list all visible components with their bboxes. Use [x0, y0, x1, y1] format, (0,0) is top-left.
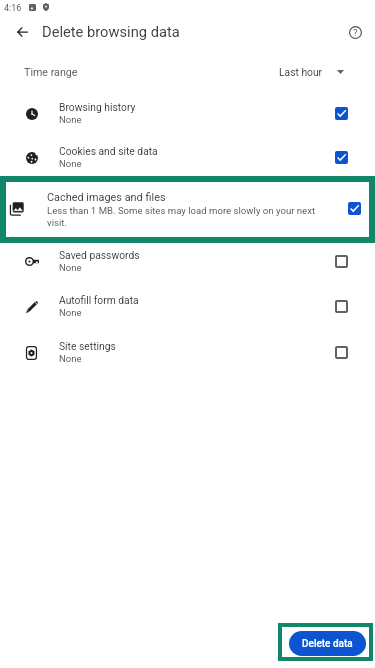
- staticText: Browsing history: [59, 101, 136, 113]
- staticText: None: [59, 353, 82, 364]
- staticText: Time range: [24, 66, 78, 79]
- staticText: 4:16: [4, 3, 22, 14]
- button[interactable]: Help & feedback: [337, 14, 373, 50]
- staticText: Delete data: [302, 638, 353, 650]
- button[interactable]: Cached images and files: [341, 195, 367, 221]
- staticText: Last hour: [279, 66, 323, 78]
- button[interactable]: Site settings: [328, 339, 354, 365]
- button[interactable]: Navigate up: [4, 14, 40, 50]
- staticText: Autofill form data: [59, 294, 139, 306]
- button[interactable]: Browsing history: [328, 100, 354, 126]
- staticText: None: [59, 114, 82, 125]
- button[interactable]: Cookies and site data: [0, 140, 375, 184]
- staticText: Site settings: [59, 340, 116, 352]
- button[interactable]: Saved passwords: [328, 248, 354, 274]
- staticText: None: [59, 262, 82, 273]
- button[interactable]: Delete data: [289, 631, 366, 656]
- staticText: None: [59, 307, 82, 318]
- staticText: Cached images and files: [47, 191, 166, 204]
- button[interactable]: Saved passwords: [0, 244, 375, 288]
- button[interactable]: Browsing history: [0, 96, 375, 140]
- button[interactable]: Cookies and site data: [328, 144, 354, 170]
- button[interactable]: Autofill form data: [328, 293, 354, 319]
- staticText: None: [59, 158, 82, 169]
- button[interactable]: Cached images and files: [0, 176, 375, 243]
- staticText: Delete browsing data: [42, 23, 180, 40]
- button[interactable]: Site settings: [0, 335, 375, 379]
- staticText: ?: [353, 27, 358, 38]
- button[interactable]: Time range: [0, 58, 375, 86]
- staticText: Saved passwords: [59, 249, 140, 261]
- staticText: Less than 1 MB. Some sites may load more…: [47, 205, 317, 228]
- staticText: Cookies and site data: [59, 145, 158, 157]
- button[interactable]: Autofill form data: [0, 289, 375, 333]
